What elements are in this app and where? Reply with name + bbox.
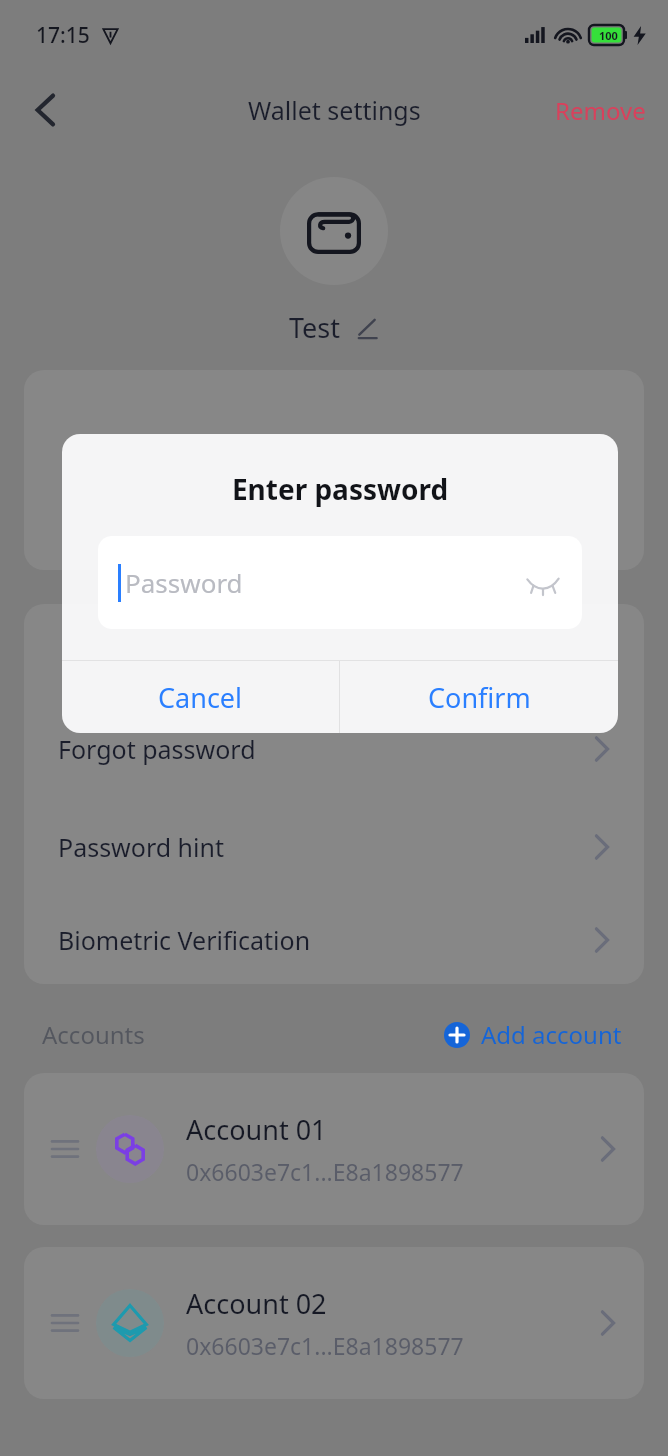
- button[interactable]: Biometric Verification: [24, 896, 644, 984]
- button[interactable]: Add account: [440, 1014, 626, 1055]
- button[interactable]: Account 02: [24, 1247, 644, 1399]
- staticText: Biometric Verification: [58, 923, 311, 957]
- staticText: Confirm: [428, 679, 531, 716]
- staticText: 0x6603e7c1...E8a1898577: [186, 1330, 464, 1361]
- staticText: Password: [125, 565, 526, 600]
- staticText: 100: [599, 28, 618, 43]
- staticText: Forgot password: [58, 732, 256, 766]
- button[interactable]: Cancel: [62, 661, 339, 733]
- button[interactable]: Password hint: [24, 798, 644, 896]
- staticText: Account 01: [186, 1111, 327, 1148]
- staticText: Account 02: [186, 1285, 327, 1322]
- button[interactable]: Password: [98, 536, 582, 629]
- staticText: Wallet settings: [248, 93, 421, 127]
- staticText: Add account: [481, 1018, 622, 1051]
- staticText: 17:15: [36, 21, 90, 50]
- button[interactable]: Account 01: [24, 1073, 644, 1225]
- staticText: Password hint: [58, 830, 224, 864]
- button[interactable]: Back: [16, 80, 76, 140]
- staticText: Accounts: [42, 1018, 145, 1051]
- button[interactable]: Test: [283, 303, 385, 352]
- other: Show password: [526, 572, 560, 594]
- staticText: Test: [289, 309, 341, 346]
- staticText: Enter password: [62, 470, 618, 508]
- button[interactable]: Forgot password: [24, 700, 644, 798]
- button[interactable]: Confirm: [340, 661, 618, 733]
- button[interactable]: Remove: [549, 84, 652, 137]
- staticText: Remove: [555, 94, 646, 127]
- staticText: 0x6603e7c1...E8a1898577: [186, 1156, 464, 1187]
- button[interactable]: Wallet avatar: [280, 177, 388, 285]
- staticText: Cancel: [158, 679, 243, 716]
